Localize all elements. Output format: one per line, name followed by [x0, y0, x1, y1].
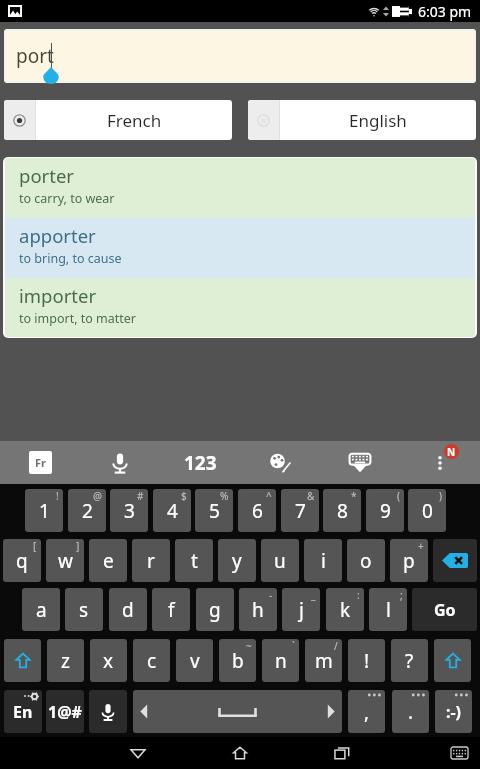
button[interactable]: w [46, 539, 84, 582]
button[interactable]: g [196, 588, 234, 631]
button[interactable]: f [152, 588, 190, 631]
staticText: h [252, 597, 264, 623]
button[interactable]: Hide keyboard [320, 441, 400, 484]
staticText: 0 [422, 498, 433, 524]
button[interactable]: 1@# [46, 690, 84, 733]
button[interactable]: , [348, 690, 385, 733]
staticText: ( [397, 489, 400, 503]
button[interactable]: k [326, 588, 364, 631]
button[interactable]: r [132, 539, 170, 582]
button[interactable]: French [4, 100, 232, 140]
staticText: j [299, 597, 304, 623]
button[interactable]: Go [412, 588, 477, 631]
staticText: ! [364, 648, 370, 674]
staticText: to import, to matter [19, 310, 137, 327]
button[interactable]: u [261, 539, 299, 582]
button[interactable]: 9 [366, 489, 404, 532]
button[interactable]: :-) [435, 690, 472, 733]
button[interactable]: z [47, 639, 84, 682]
staticText: English [349, 109, 407, 132]
staticText: 2 [82, 498, 93, 524]
staticText: s [79, 597, 89, 623]
button[interactable]: m [305, 639, 342, 682]
staticText: $ [181, 489, 187, 503]
button[interactable]: n [262, 639, 299, 682]
staticText: y [232, 548, 242, 574]
button[interactable]: En [4, 690, 42, 733]
staticText: 5 [209, 498, 220, 524]
staticText: p [403, 548, 415, 574]
button[interactable]: q [3, 539, 41, 582]
button[interactable]: Home [216, 737, 264, 769]
button[interactable]: c [133, 639, 170, 682]
button[interactable]: o [347, 539, 385, 582]
button[interactable]: 1 [25, 489, 63, 532]
button[interactable]: x [90, 639, 127, 682]
button[interactable]: s [65, 588, 103, 631]
button[interactable]: Backspace [433, 539, 477, 582]
staticText: Fr [35, 455, 46, 470]
staticText: porter [19, 163, 74, 188]
button[interactable]: Numbers [160, 441, 240, 484]
button[interactable]: Language [0, 441, 80, 484]
button[interactable]: 4 [153, 489, 191, 532]
staticText: m [315, 648, 333, 674]
button[interactable]: Recents [318, 737, 366, 769]
button[interactable]: apporter [5, 218, 475, 278]
button[interactable]: e [89, 539, 127, 582]
button[interactable]: Voice input [80, 441, 160, 484]
button[interactable]: 6 [238, 489, 276, 532]
button[interactable]: v [176, 639, 213, 682]
button[interactable]: 8 [323, 489, 361, 532]
staticText: @ [93, 489, 102, 503]
staticText: port [16, 43, 54, 69]
staticText: % [220, 489, 229, 503]
button[interactable]: port [6, 31, 474, 81]
button[interactable]: English [248, 100, 476, 140]
button[interactable]: . [392, 690, 429, 733]
button[interactable]: Shift [4, 639, 41, 682]
staticText: :-) [446, 701, 462, 723]
button[interactable]: i [304, 539, 342, 582]
staticText: ; [400, 588, 403, 602]
button[interactable]: Microphone [89, 690, 127, 733]
button[interactable]: 3 [110, 489, 148, 532]
button[interactable]: Space [133, 690, 342, 733]
button[interactable]: j [282, 588, 320, 631]
button[interactable]: y [218, 539, 256, 582]
other: Microphone [108, 451, 132, 475]
button[interactable]: 5 [195, 489, 233, 532]
button[interactable]: 7 [281, 489, 319, 532]
staticText: . [408, 699, 414, 725]
button[interactable]: Switch keyboard [437, 737, 480, 769]
button[interactable]: b [219, 639, 256, 682]
button[interactable]: h [239, 588, 277, 631]
staticText: u [274, 548, 286, 574]
staticText: 4 [167, 498, 178, 524]
staticText: [ [33, 539, 37, 553]
staticText: Go [434, 599, 456, 621]
button[interactable]: p [390, 539, 428, 582]
staticText: 123 [184, 450, 217, 476]
button[interactable]: ! [348, 639, 385, 682]
button[interactable]: Theme [240, 441, 320, 484]
button[interactable]: porter [5, 158, 475, 218]
staticText: importer [19, 283, 97, 308]
button[interactable]: 0 [408, 489, 446, 532]
button[interactable]: a [22, 588, 60, 631]
button[interactable]: t [175, 539, 213, 582]
button[interactable]: l [369, 588, 407, 631]
button[interactable]: d [109, 588, 147, 631]
staticText: _ [311, 588, 316, 602]
button[interactable]: Back [114, 737, 162, 769]
button[interactable]: importer [5, 278, 475, 337]
staticText: z [61, 648, 70, 674]
button[interactable]: Shift [434, 639, 471, 682]
other: Shift [446, 653, 460, 668]
button[interactable]: ? [391, 639, 428, 682]
other: Shift [16, 653, 30, 668]
button[interactable]: More options [400, 441, 480, 484]
staticText: N [447, 445, 456, 459]
button[interactable]: 2 [68, 489, 106, 532]
staticText: n [275, 648, 287, 674]
